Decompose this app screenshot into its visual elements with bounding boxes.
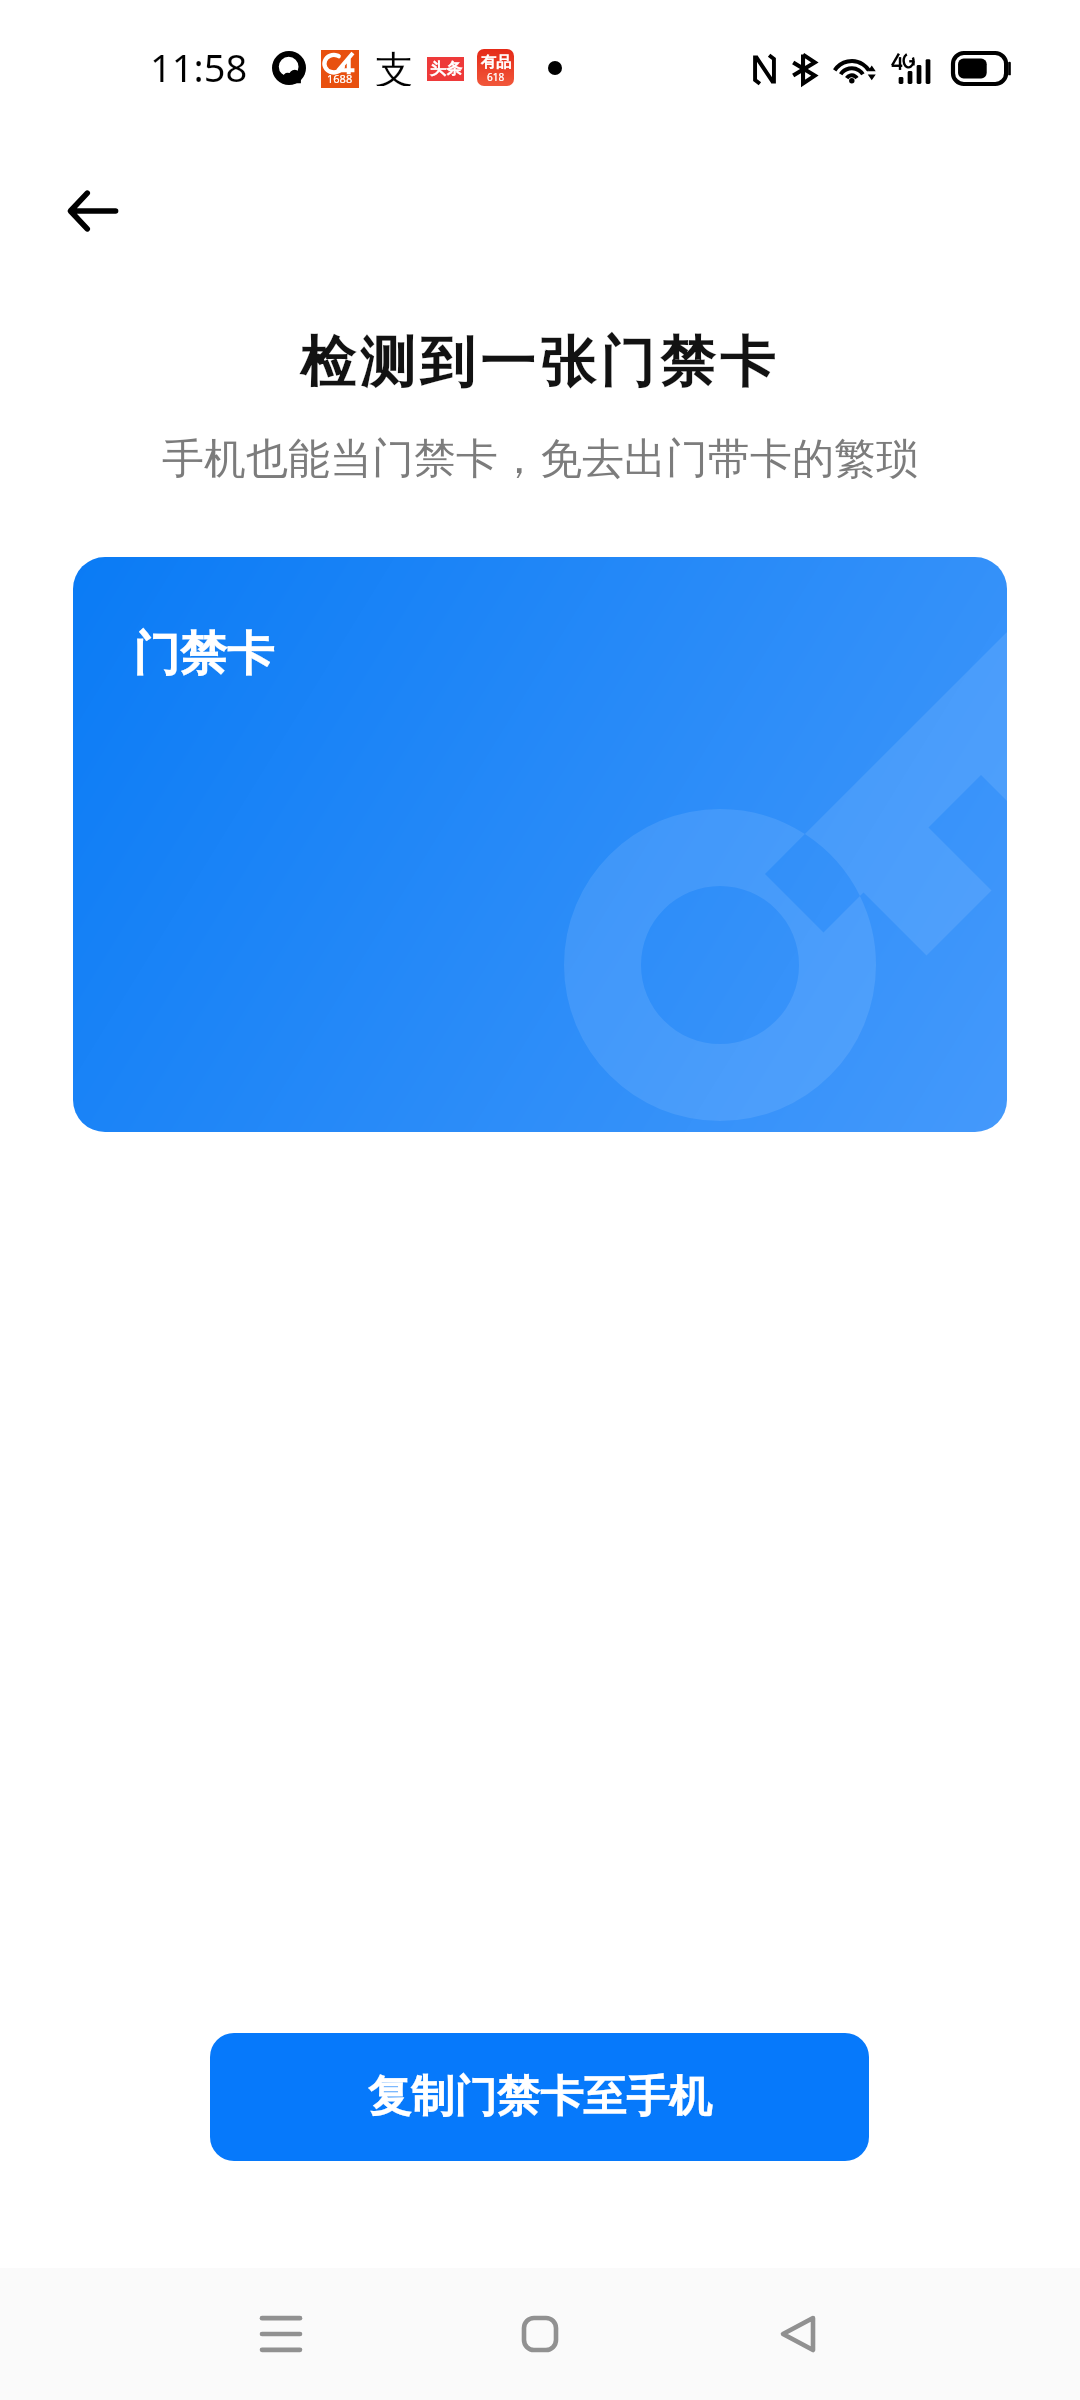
staticText: 检测到一张门禁卡 (0, 328, 1080, 397)
button[interactable]: Back (33, 151, 153, 271)
staticText: 有品 (481, 53, 511, 72)
staticText: 手机也能当门禁卡，免去出门带卡的繁琐 (0, 433, 1080, 486)
button[interactable]: Back (732, 2268, 864, 2400)
button[interactable]: 复制门禁卡至手机 (210, 2033, 869, 2161)
staticText: 11:58 (150, 41, 248, 93)
button[interactable]: Home (474, 2268, 606, 2400)
button[interactable]: 门禁卡 (73, 557, 1007, 1132)
staticText: 头条 (430, 59, 462, 79)
staticText: 618 (487, 70, 505, 84)
staticText: 门禁卡 (133, 625, 274, 684)
staticText: 1688 (327, 71, 353, 86)
staticText: 复制门禁卡至手机 (368, 2070, 712, 2124)
staticText: 支 (375, 46, 413, 86)
button[interactable]: Recent apps (215, 2268, 347, 2400)
